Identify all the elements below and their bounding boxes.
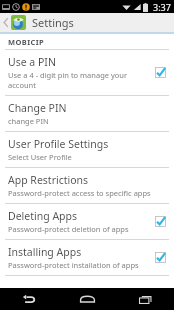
- button[interactable]: Toggle: [154, 251, 167, 264]
- staticText: Password-protect access to specific apps: [8, 188, 151, 198]
- button[interactable]: Recent apps: [116, 288, 174, 310]
- staticText: Select User Profile: [8, 152, 72, 162]
- staticText: 3:37: [153, 1, 171, 13]
- button[interactable]: Use a PIN: [0, 50, 174, 95]
- staticText: Deleting Apps: [8, 209, 78, 223]
- button[interactable]: Navigate up: [0, 13, 28, 32]
- button[interactable]: Change PIN: [0, 96, 174, 131]
- button[interactable]: Installing Apps: [0, 240, 174, 275]
- staticText: App Restrictions: [8, 173, 89, 187]
- staticText: Change PIN: [8, 101, 67, 115]
- staticText: Installing Apps: [8, 245, 82, 259]
- button[interactable]: App Restrictions: [0, 168, 174, 203]
- staticText: Password-protect deletion of apps: [8, 224, 129, 234]
- staticText: MOBICIP: [8, 37, 45, 47]
- button[interactable]: Toggle: [154, 215, 167, 228]
- staticText: Use a 4 - digit pin to manage your accou…: [8, 70, 150, 90]
- button[interactable]: User Profile Settings: [0, 132, 174, 167]
- button[interactable]: Home: [58, 288, 116, 310]
- staticText: Settings: [32, 15, 74, 30]
- staticText: change PIN: [8, 116, 49, 126]
- button[interactable]: Back: [0, 288, 58, 310]
- button[interactable]: Toggle: [154, 66, 167, 79]
- staticText: User Profile Settings: [8, 137, 109, 151]
- staticText: Password-protect installation of apps: [8, 260, 139, 270]
- button[interactable]: Deleting Apps: [0, 204, 174, 239]
- staticText: Use a PIN: [8, 55, 56, 69]
